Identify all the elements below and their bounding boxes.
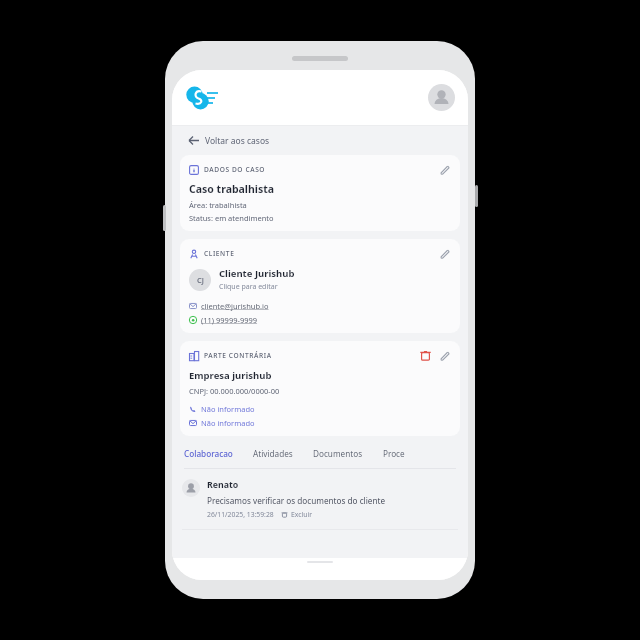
button[interactable]: Documentos — [313, 446, 363, 461]
button[interactable]: Editar — [438, 349, 451, 362]
staticText: Voltar aos casos — [205, 135, 270, 147]
staticText: Cliente Jurishub — [219, 267, 295, 280]
staticText: Atividades — [253, 448, 293, 459]
button[interactable]: Excluir — [281, 510, 313, 519]
staticText: Excluir — [291, 510, 313, 519]
staticText: Proce — [383, 448, 405, 459]
button[interactable]: Proce — [383, 446, 405, 461]
button[interactable]: Excluir parte — [419, 349, 432, 362]
staticText: Não informado — [201, 418, 255, 428]
button[interactable]: Editar — [438, 163, 451, 176]
staticText: Clique para editar — [219, 282, 278, 292]
staticText: Documentos — [313, 448, 363, 459]
staticText: CLIENTE — [204, 249, 235, 258]
button[interactable]: Editar — [438, 247, 451, 260]
staticText: DADOS DO CASO — [204, 165, 266, 174]
staticText: Status: em atendimento — [189, 213, 274, 223]
staticText: Área: trabalhista — [189, 200, 247, 210]
button[interactable]: Perfil — [428, 84, 455, 111]
button[interactable]: Colaboracao — [184, 446, 233, 461]
staticText: Caso trabalhista — [189, 182, 275, 196]
staticText: (11) 99999-9999 — [201, 315, 258, 325]
staticText: CNPJ: 00.000.000/0000-00 — [189, 386, 280, 396]
staticText: Colaboracao — [184, 448, 233, 459]
button[interactable]: (11) 99999-9999 — [189, 315, 258, 325]
staticText: Renato — [207, 479, 239, 491]
staticText: cliente@jurishub.io — [201, 301, 269, 311]
staticText: PARTE CONTRÁRIA — [204, 351, 272, 360]
button[interactable]: Atividades — [253, 446, 293, 461]
staticText: Precisamos verificar os documentos do cl… — [207, 495, 386, 506]
staticText: Não informado — [201, 404, 255, 414]
button[interactable]: Voltar aos casos — [172, 126, 468, 155]
staticText: Empresa jurishub — [189, 369, 272, 382]
button[interactable]: cliente@jurishub.io — [189, 301, 269, 311]
staticText: CJ — [197, 275, 204, 285]
staticText: 26/11/2025, 13:59:28 — [207, 510, 274, 519]
